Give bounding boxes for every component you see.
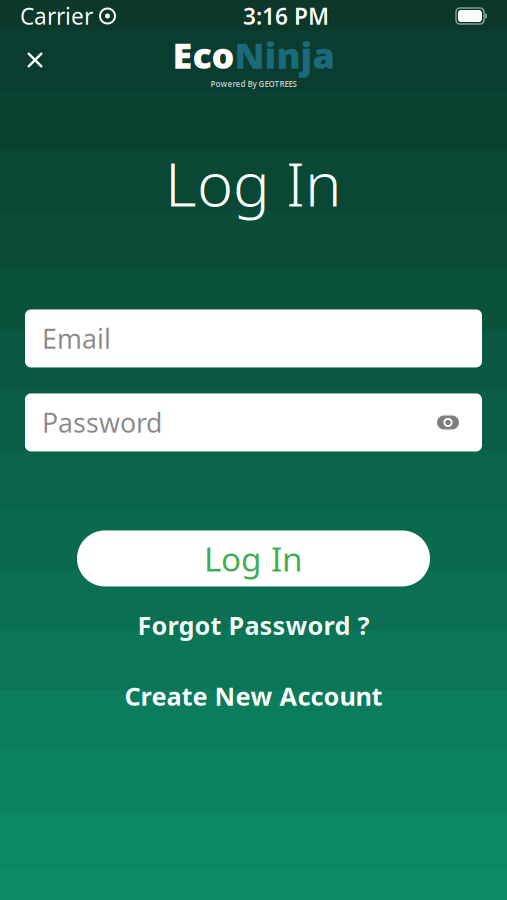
staticText: Carrier — [20, 1, 93, 31]
staticText: Log In — [204, 536, 303, 581]
staticText: Password — [42, 405, 162, 440]
button[interactable]: Close — [13, 38, 57, 82]
staticText: Email — [42, 321, 111, 356]
staticText: Log In — [165, 142, 342, 223]
staticText: Create New Account — [124, 679, 382, 713]
button[interactable]: Log In — [77, 530, 430, 586]
staticText: Ninja — [234, 31, 334, 79]
staticText: 3:16 PM — [243, 1, 329, 31]
button[interactable]: Forgot Password ? — [119, 602, 387, 648]
button[interactable]: Show password — [431, 405, 465, 439]
staticText: Forgot Password ? — [137, 608, 369, 642]
button[interactable]: Create New Account — [106, 673, 400, 719]
staticText: Eco — [172, 31, 234, 79]
staticText: Powered By GEOTREES — [210, 79, 296, 89]
